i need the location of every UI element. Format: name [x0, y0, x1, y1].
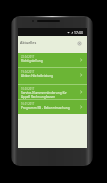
staticText: 10.03.2017	[21, 87, 35, 91]
button[interactable]: 22.04.2017	[18, 53, 87, 68]
staticText: 22.04.2017	[21, 55, 35, 59]
button[interactable]: 16.01.2017	[18, 100, 87, 114]
staticText: Aktion Höchstleistung	[21, 74, 53, 78]
staticText: Aktuelles	[20, 40, 37, 45]
button[interactable]: 19.04.2017	[18, 68, 87, 85]
staticText: Richtigstellung	[21, 59, 43, 63]
staticText: 17:33	[74, 30, 83, 35]
staticText: Programm BS - Bekanntmachung	[21, 106, 70, 110]
staticText: Service-Nummernänderung für Appell Rechn…	[21, 91, 67, 99]
button[interactable]: 10.03.2017	[18, 85, 87, 100]
button[interactable]: Options	[76, 40, 82, 46]
staticText: 16.01.2017	[21, 102, 35, 106]
staticText: 19.04.2017	[21, 70, 35, 74]
